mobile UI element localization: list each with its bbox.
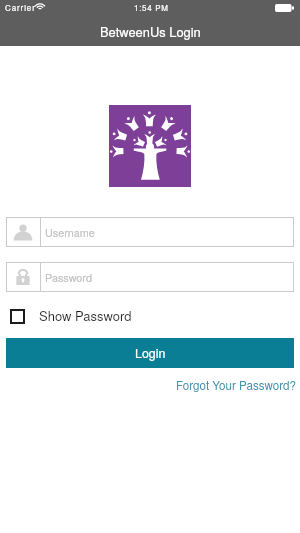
staticText: BetweenUs Login: [100, 22, 201, 40]
button[interactable]: Show Password: [10, 304, 132, 326]
button[interactable]: Forgot Your Password?: [176, 377, 296, 394]
staticText: Username: [45, 225, 95, 240]
staticText: Login: [135, 344, 166, 362]
button[interactable]: Password: [6, 262, 294, 292]
staticText: Password: [45, 270, 92, 285]
other: Username: [14, 223, 32, 241]
button[interactable]: Username: [6, 217, 294, 247]
staticText: Show Password: [39, 306, 132, 325]
staticText: 1:54 PM: [134, 2, 169, 13]
staticText: Carrier: [5, 2, 36, 13]
button[interactable]: Login: [6, 338, 294, 368]
other: Password: [14, 268, 32, 286]
